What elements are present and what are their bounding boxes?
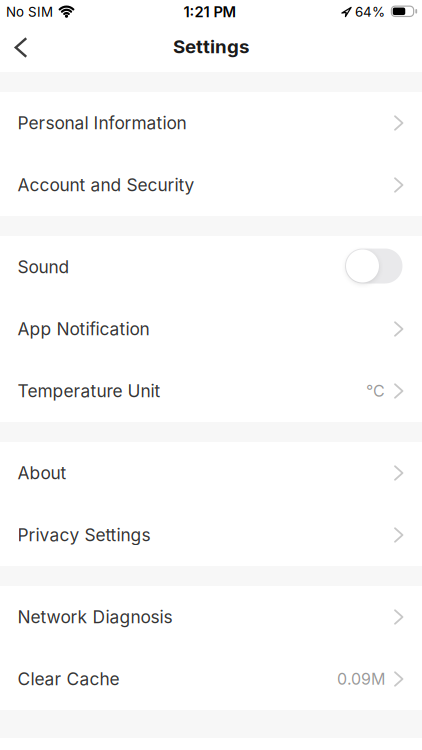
- staticText: 64%: [355, 4, 385, 20]
- button[interactable]: App Notification: [0, 298, 422, 360]
- staticText: App Notification: [17, 319, 149, 339]
- staticText: 0.09M: [337, 670, 385, 688]
- button[interactable]: Personal Information: [0, 92, 422, 154]
- staticText: Clear Cache: [17, 669, 119, 689]
- staticText: °C: [366, 382, 385, 400]
- staticText: Privacy Settings: [17, 525, 150, 545]
- staticText: No SIM: [6, 4, 53, 20]
- button[interactable]: Network Diagnosis: [0, 586, 422, 648]
- staticText: Personal Information: [17, 113, 186, 133]
- staticText: Account and Security: [17, 175, 194, 195]
- staticText: Network Diagnosis: [17, 607, 172, 627]
- staticText: Sound: [17, 257, 69, 277]
- button[interactable]: Clear Cache: [0, 648, 422, 710]
- button[interactable]: About: [0, 442, 422, 504]
- button[interactable]: Account and Security: [0, 154, 422, 216]
- staticText: Temperature Unit: [17, 381, 160, 401]
- staticText: About: [17, 463, 66, 483]
- button[interactable]: Temperature Unit: [0, 360, 422, 422]
- button[interactable]: Privacy Settings: [0, 504, 422, 566]
- staticText: 1:21 PM: [183, 3, 236, 21]
- button[interactable]: Back: [0, 23, 42, 72]
- staticText: Settings: [173, 35, 249, 57]
- button[interactable]: Sound: [345, 248, 402, 283]
